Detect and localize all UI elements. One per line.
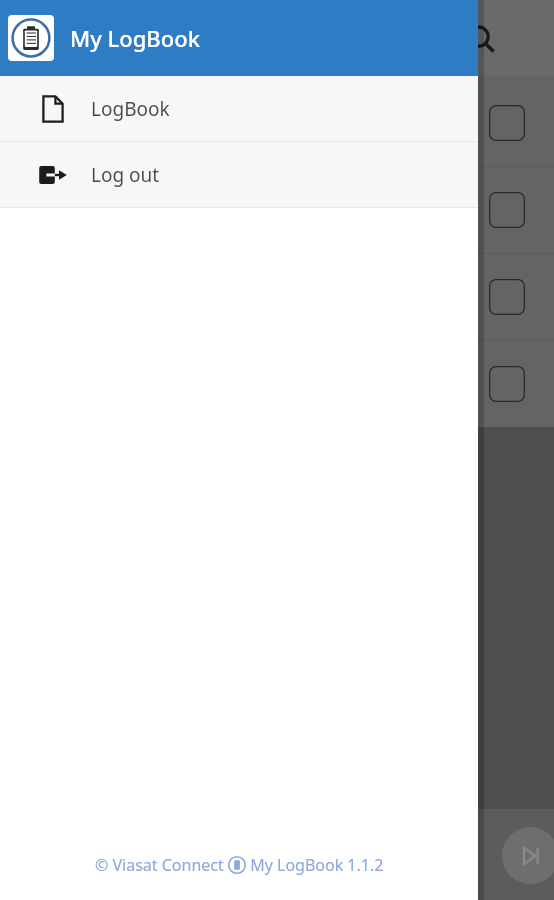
button[interactable]: Select item: [489, 366, 525, 402]
button[interactable]: Select item: [489, 279, 525, 315]
button[interactable]: Next: [502, 827, 554, 884]
button[interactable]: LogBook: [0, 76, 478, 141]
button[interactable]: Select item: [489, 192, 525, 228]
button[interactable]: Log out: [0, 142, 478, 207]
other: My LogBook logo: [8, 15, 54, 61]
staticText: My LogBook: [70, 23, 200, 53]
staticText: LogBook: [91, 96, 170, 122]
staticText: Log out: [91, 162, 160, 188]
staticText: © Viasat Connect: [95, 854, 228, 876]
button[interactable]: Select item: [489, 105, 525, 141]
other: Search: [466, 24, 496, 54]
staticText: My LogBook 1.1.2: [246, 854, 384, 876]
